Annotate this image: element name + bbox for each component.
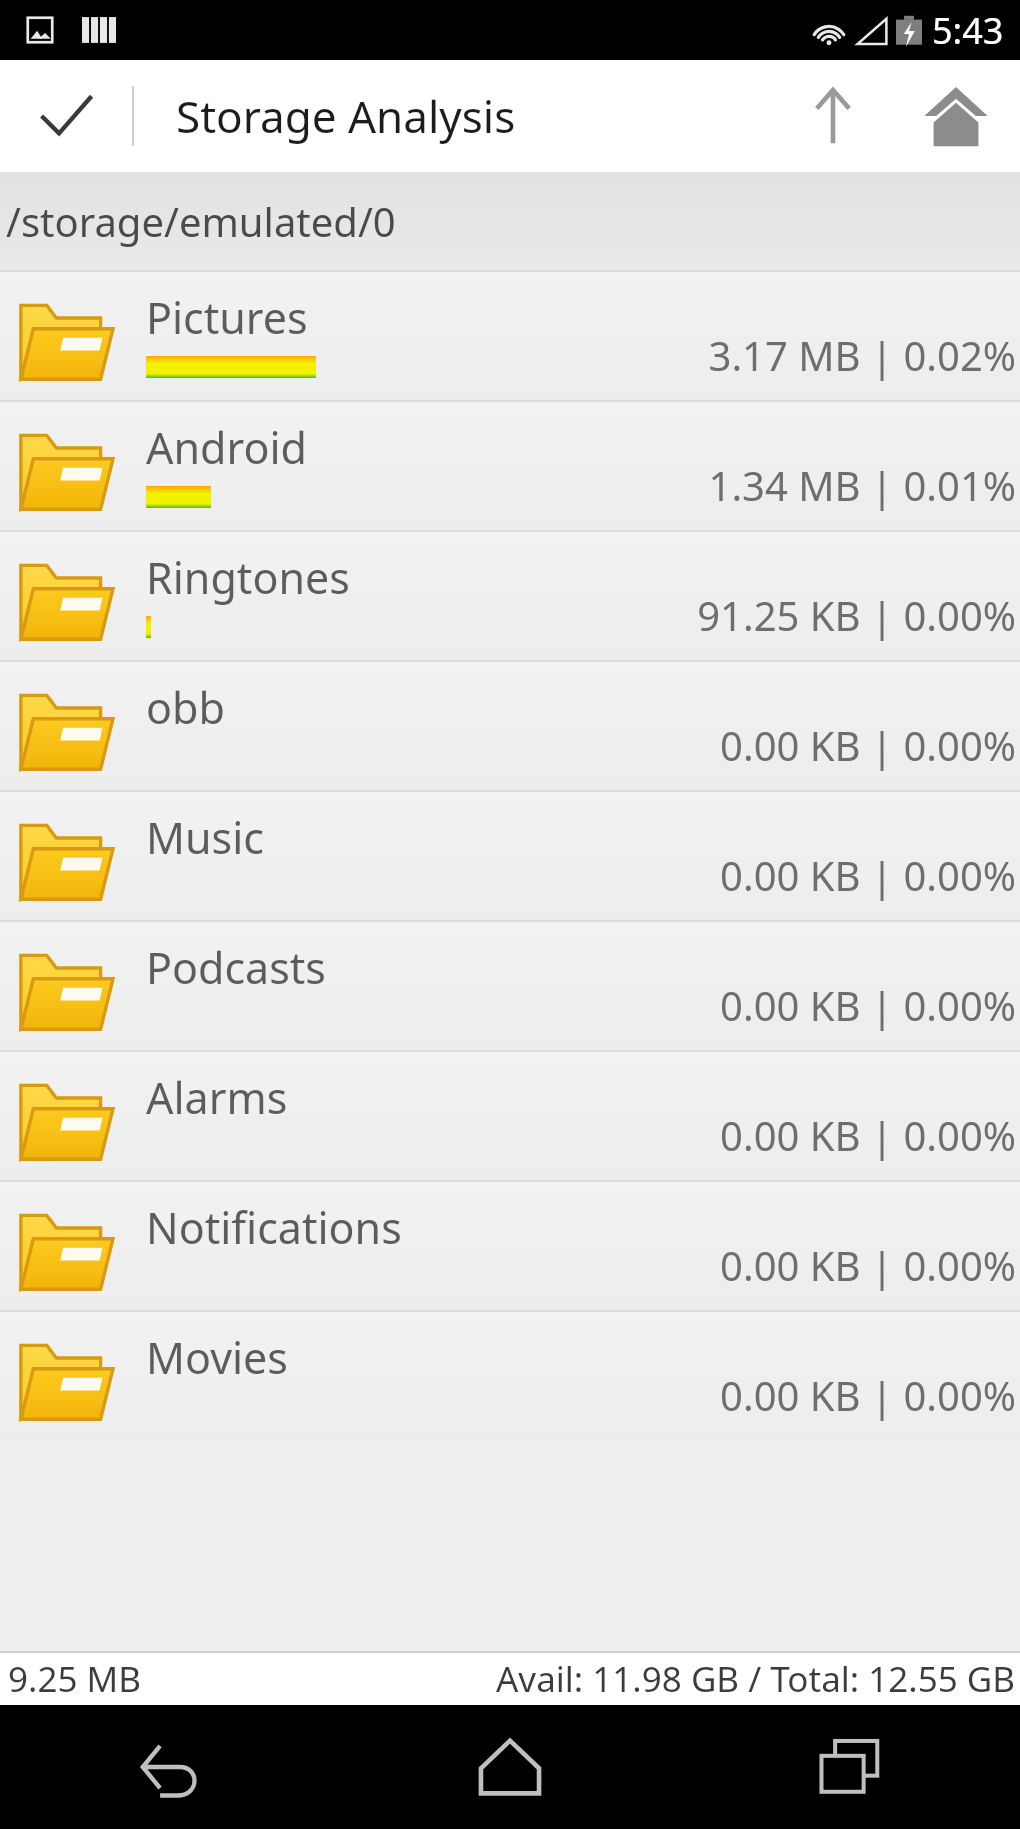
button[interactable]: Home [340,1705,680,1829]
staticText: 91.25 KB | 0.00% [697,588,1016,642]
button[interactable]: Movies [0,1312,1020,1440]
staticText: obb [146,678,225,737]
button[interactable]: Notifications [0,1182,1020,1310]
button[interactable]: Podcasts [0,922,1020,1050]
button[interactable]: /storage/emulated/0 [0,172,1020,270]
button[interactable]: Up one level [774,60,892,172]
staticText: /storage/emulated/0 [6,194,396,248]
button[interactable]: Recent apps [680,1705,1020,1829]
staticText: Avail: 11.98 GB / Total: 12.55 GB [496,1655,1016,1703]
button[interactable]: obb [0,662,1020,790]
staticText: 3.17 MB | 0.02% [708,328,1016,382]
staticText: 0.00 KB | 0.00% [720,978,1016,1032]
staticText: Storage Analysis [176,86,516,146]
staticText: 0.00 KB | 0.00% [720,848,1016,902]
staticText: Pictures [146,288,308,347]
button[interactable]: Android [0,402,1020,530]
staticText: Ringtones [146,548,350,607]
staticText: Android [146,418,307,477]
staticText: 0.00 KB | 0.00% [720,1238,1016,1292]
staticText: 5:43 [932,6,1004,55]
staticText: Movies [146,1328,288,1387]
button[interactable]: Ringtones [0,532,1020,660]
staticText: 0.00 KB | 0.00% [720,718,1016,772]
staticText: 9.25 MB [8,1655,142,1703]
staticText: Podcasts [146,938,326,997]
staticText: 1.34 MB | 0.01% [708,458,1016,512]
button[interactable]: Pictures [0,272,1020,400]
button[interactable]: Home [892,60,1020,172]
staticText: 0.00 KB | 0.00% [720,1368,1016,1422]
button[interactable]: Select [0,60,132,172]
staticText: Notifications [146,1198,402,1257]
button[interactable]: Alarms [0,1052,1020,1180]
button[interactable]: Back [0,1705,340,1829]
staticText: 0.00 KB | 0.00% [720,1108,1016,1162]
staticText: Alarms [146,1068,288,1127]
staticText: Music [146,808,264,867]
button[interactable]: Music [0,792,1020,920]
